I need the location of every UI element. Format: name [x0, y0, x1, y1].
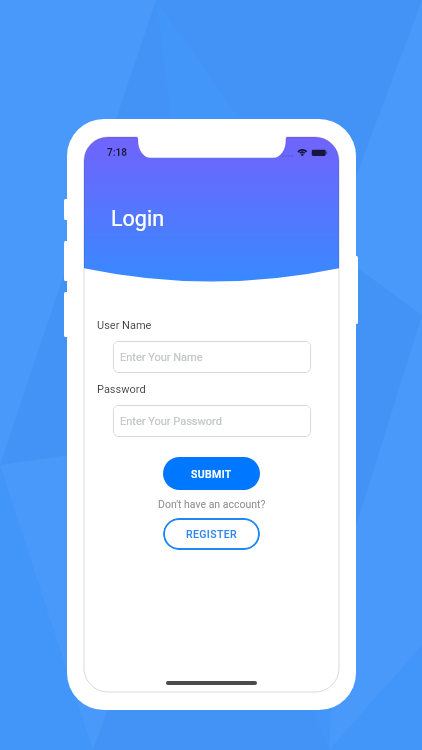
button[interactable]: Enter Your Name — [113, 341, 311, 373]
staticText: Enter Your Password — [120, 415, 222, 428]
staticText: User Name — [97, 319, 152, 332]
button[interactable]: REGISTER — [163, 518, 260, 550]
staticText: Don't have an account? — [158, 498, 266, 510]
button[interactable]: SUBMIT — [163, 457, 260, 490]
staticText: Enter Your Name — [120, 351, 203, 364]
staticText: REGISTER — [186, 528, 238, 540]
staticText: 7:18 — [107, 147, 128, 159]
button[interactable]: Enter Your Password — [113, 405, 311, 437]
staticText: Login — [111, 206, 165, 231]
staticText: SUBMIT — [191, 468, 232, 480]
other: Signal, wifi and battery status — [281, 147, 329, 159]
staticText: Password — [97, 383, 146, 396]
